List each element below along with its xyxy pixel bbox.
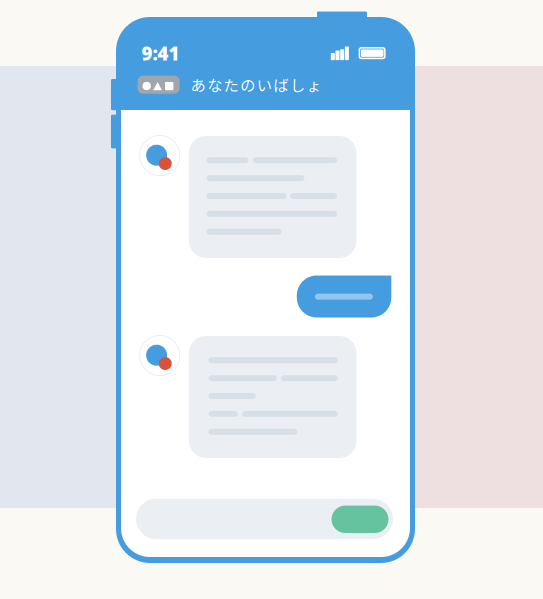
staticText: あなたのいばしょ (190, 73, 322, 96)
staticText: 9:41 (141, 41, 179, 66)
button[interactable]: Message field (0, 0, 543, 599)
button[interactable]: Send (0, 0, 543, 599)
button[interactable]: Menu (0, 0, 543, 599)
